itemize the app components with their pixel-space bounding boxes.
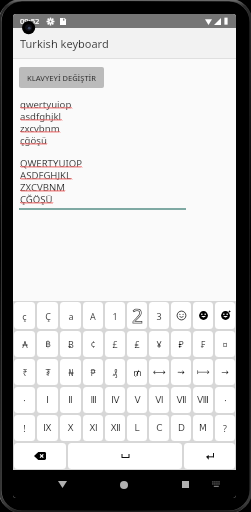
button[interactable]: ⟼ <box>193 359 213 385</box>
button[interactable]: Emoji <box>215 302 235 329</box>
staticText: Ⅾ <box>178 423 185 433</box>
staticText: asdfghjkl <box>20 110 62 122</box>
button[interactable]: ₦ <box>60 359 81 385</box>
button[interactable]: ₳ <box>14 331 35 357</box>
staticText: ₱ <box>90 366 96 378</box>
button[interactable]: Ⅾ <box>171 415 191 441</box>
staticText: 3 <box>156 310 162 322</box>
button[interactable]: · <box>14 387 35 413</box>
button[interactable]: Home <box>115 476 132 493</box>
button[interactable]: Ⅽ <box>149 415 169 441</box>
staticText: 09:52 <box>20 16 40 26</box>
button[interactable]: ₣ <box>193 331 213 357</box>
staticText: ₳ <box>22 338 28 350</box>
staticText: 2 <box>132 303 143 329</box>
button[interactable]: · <box>215 387 235 413</box>
button[interactable]: Switch keyboard <box>209 477 224 492</box>
staticText: Ⅻ <box>110 423 121 433</box>
staticText: Ⅶ <box>176 395 187 405</box>
button[interactable]: ₱ <box>83 359 103 385</box>
button[interactable]: Ⅸ <box>37 415 58 441</box>
button[interactable]: ¥ <box>149 331 169 357</box>
staticText: Ⅵ <box>155 395 164 405</box>
staticText: Ç <box>45 310 51 322</box>
staticText: 1 <box>112 310 118 322</box>
staticText: a <box>68 310 74 322</box>
button[interactable]: £ <box>105 331 125 357</box>
staticText: ASDFGHJKL <box>20 169 72 181</box>
button[interactable]: Ç <box>37 302 58 329</box>
button[interactable]: Back <box>54 476 71 493</box>
staticText: Turkish keyboard <box>20 36 109 51</box>
button[interactable]: Ⅳ <box>105 387 125 413</box>
staticText: Ⅳ <box>111 395 120 405</box>
button[interactable]: ₥ <box>127 359 147 385</box>
staticText: ÇĞÖŞÜ <box>20 193 53 205</box>
button[interactable]: Ⅶ <box>171 387 191 413</box>
button[interactable]: Emoji <box>193 302 213 329</box>
button[interactable]: → <box>215 359 235 385</box>
staticText: ₹ <box>22 366 28 378</box>
button[interactable]: ¢ <box>83 331 103 357</box>
button[interactable]: ₰ <box>105 359 125 385</box>
button[interactable]: Space <box>68 443 182 469</box>
staticText: ₰ <box>112 366 118 378</box>
staticText: ¢ <box>90 338 96 350</box>
button[interactable]: ⟷ <box>149 359 169 385</box>
staticText: Ⅷ <box>197 395 209 405</box>
button[interactable]: ₮ <box>37 359 58 385</box>
button[interactable]: A <box>83 302 103 329</box>
staticText: KLAVYEYİ DEĞİŞTİR <box>27 73 97 83</box>
button[interactable]: Ⅱ <box>60 387 81 413</box>
button[interactable]: 1 <box>105 302 125 329</box>
button[interactable]: Ⅿ <box>193 415 213 441</box>
staticText: ⟼ <box>197 367 210 377</box>
button[interactable]: KLAVYEYİ DEĞİŞTİR <box>19 67 104 88</box>
staticText: ฿ <box>45 339 51 349</box>
button[interactable]: ₤ <box>127 331 147 357</box>
button[interactable]: ? <box>215 415 235 441</box>
button[interactable]: ! <box>14 415 35 441</box>
staticText: ⇝ <box>177 367 185 377</box>
staticText: A <box>90 310 96 322</box>
button[interactable]: ¤ <box>215 331 235 357</box>
staticText: ⟷ <box>153 367 166 377</box>
button[interactable]: Ⅺ <box>83 415 103 441</box>
staticText: £ <box>112 338 118 350</box>
button[interactable]: ฿ <box>37 331 58 357</box>
button[interactable]: Ⅵ <box>149 387 169 413</box>
button[interactable]: ç <box>14 302 35 329</box>
button[interactable]: Ⅷ <box>193 387 213 413</box>
button[interactable]: Ⅲ <box>83 387 103 413</box>
staticText: Ⅱ <box>68 395 73 405</box>
button[interactable]: a <box>60 302 81 329</box>
button[interactable]: 3 <box>149 302 169 329</box>
staticText: → <box>221 367 229 377</box>
button[interactable]: ⇝ <box>171 359 191 385</box>
button[interactable]: ₹ <box>14 359 35 385</box>
button[interactable]: Ⅹ <box>60 415 81 441</box>
staticText: Ⅲ <box>90 395 97 405</box>
staticText: · <box>23 394 26 406</box>
staticText: ₦ <box>68 366 74 378</box>
button[interactable]: Ⅴ <box>127 387 147 413</box>
button[interactable]: Ⅼ <box>127 415 147 441</box>
button[interactable]: Enter <box>184 443 235 469</box>
staticText: ₽ <box>178 338 184 350</box>
staticText: ? <box>223 422 227 434</box>
button[interactable]: Recents <box>177 476 194 493</box>
staticText: çğöşü <box>20 134 47 146</box>
button[interactable]: ₽ <box>171 331 191 357</box>
staticText: · <box>224 394 227 406</box>
button[interactable]: Ƀ <box>60 331 81 357</box>
button[interactable]: Ⅰ <box>37 387 58 413</box>
staticText: Ⅹ <box>67 423 74 433</box>
button[interactable]: Emoji <box>171 302 191 329</box>
staticText: Ⅽ <box>156 423 163 433</box>
button[interactable]: Backspace <box>14 443 66 469</box>
staticText: ₣ <box>200 338 206 350</box>
staticText: ₥ <box>133 366 142 378</box>
button[interactable]: 2 <box>127 302 147 329</box>
staticText: ! <box>23 422 26 434</box>
button[interactable]: Ⅻ <box>105 415 125 441</box>
